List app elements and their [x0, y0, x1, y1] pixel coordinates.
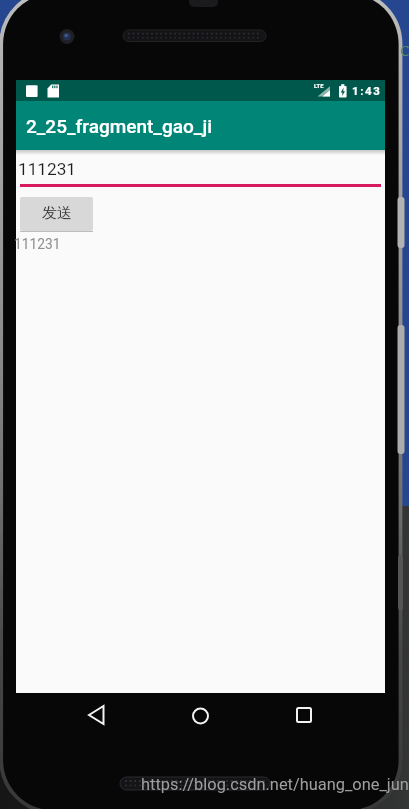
button[interactable]: 发送 — [20, 197, 93, 231]
staticText: 2_25_fragment_gao_ji — [26, 115, 213, 137]
staticText: 111231 — [14, 236, 61, 252]
staticText: 111231 — [18, 159, 76, 179]
button[interactable]: 111231 — [16, 156, 385, 192]
staticText: C — [400, 40, 409, 60]
button[interactable] — [72, 698, 122, 734]
button[interactable] — [176, 698, 226, 734]
staticText: 发送 — [42, 204, 72, 223]
staticText: LTE — [314, 83, 324, 90]
button[interactable] — [280, 698, 330, 734]
staticText: 1:43 — [352, 84, 382, 97]
staticText: https://blog.csdn.net/huang_one_jun — [141, 775, 409, 794]
